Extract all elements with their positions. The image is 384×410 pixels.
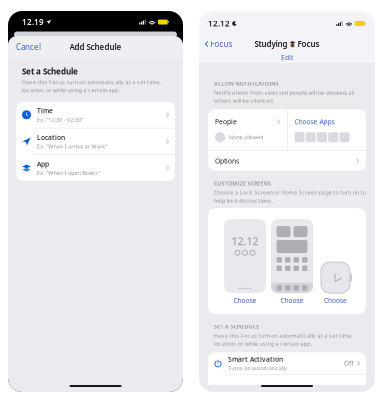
staticText: Time [37, 106, 53, 115]
button[interactable]: App [16, 155, 175, 181]
button[interactable]: Choose [324, 293, 347, 305]
staticText: Focus [210, 39, 232, 49]
staticText: 12.12 [208, 18, 230, 29]
staticText: Focus [297, 39, 319, 49]
staticText: Location [37, 133, 65, 142]
staticText: Choose [280, 296, 303, 305]
staticText: Studying [254, 39, 287, 49]
staticText: Notifications from selected people will … [214, 89, 354, 96]
button[interactable]: Location [16, 128, 175, 154]
staticText: Cancel [16, 42, 41, 52]
staticText: CUSTOMIZE SCREENS [214, 180, 271, 187]
staticText: 12.19 [22, 17, 44, 27]
staticText: Set a Schedule [22, 66, 78, 77]
staticText: Smart Activation [228, 355, 283, 364]
staticText: People [215, 117, 237, 126]
staticText: Ex. “When I open Books” [37, 169, 100, 176]
staticText: Choose [233, 296, 256, 305]
staticText: None allowed [229, 134, 263, 141]
button[interactable]: Smart Activation [208, 352, 366, 374]
staticText: Ex. “When I arrive at Work” [37, 143, 107, 150]
staticText: 12.12 [231, 234, 258, 248]
staticText: help limit distractions. [214, 197, 273, 204]
staticText: location, or while using a certain app. [22, 87, 119, 94]
staticText: Turns on automatically [228, 365, 287, 372]
button[interactable]: Options [208, 151, 366, 171]
button[interactable]: Choose Apps [288, 109, 356, 150]
staticText: others will be silenced. [214, 97, 274, 104]
button[interactable]: Focus [199, 36, 238, 52]
staticText: Choose a Lock Screen or Home Screen page… [214, 189, 366, 196]
staticText: Ex. “12:30 - 02:30” [37, 116, 83, 123]
button[interactable]: People [208, 109, 287, 150]
staticText: Add Schedule [69, 42, 121, 52]
staticText: Have this Focus turn on automatically at… [214, 332, 352, 339]
staticText: Options [215, 156, 239, 165]
button[interactable]: Choose [280, 293, 303, 305]
staticText: Have this Focus turn on automatically at… [22, 79, 160, 86]
button[interactable]: Edit [199, 52, 375, 63]
staticText: Edit [281, 53, 293, 62]
staticText: SET A SCHEDULE [214, 323, 259, 330]
staticText: Off [344, 359, 354, 368]
staticText: Choose Apps [295, 117, 335, 126]
button[interactable]: Time [16, 102, 175, 128]
staticText: ALLOW NOTIFICATIONS [214, 80, 278, 87]
staticText: location, or while using a certain app. [214, 340, 311, 347]
staticText: App [37, 159, 49, 168]
button[interactable]: Cancel [8, 38, 49, 56]
button[interactable]: Choose [233, 293, 256, 305]
staticText: Choose [324, 296, 347, 305]
